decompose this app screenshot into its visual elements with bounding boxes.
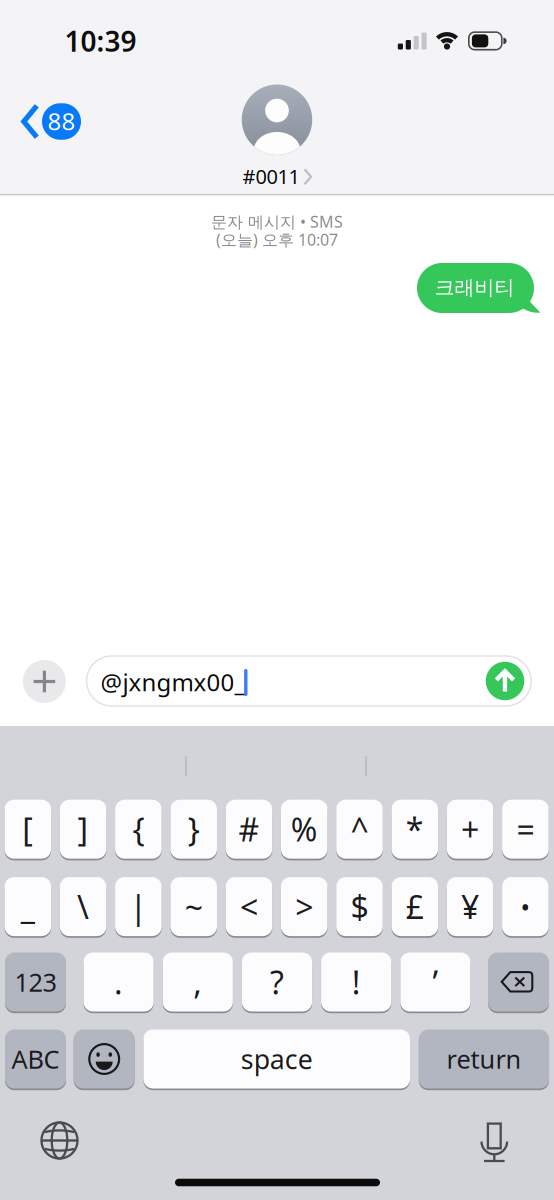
staticText: ¥	[461, 885, 479, 928]
button[interactable]: 123	[5, 951, 66, 1012]
staticText: |	[129, 885, 147, 928]
button[interactable]: Dictation	[470, 1117, 518, 1165]
staticText: ABC	[11, 1042, 59, 1076]
staticText: !	[352, 961, 361, 1003]
staticText: @jxngmx00_	[100, 666, 245, 698]
staticText: #	[238, 808, 259, 850]
staticText: 문자 메시지 • SMS	[211, 211, 343, 232]
button[interactable]: !	[321, 951, 391, 1012]
staticText: <	[240, 885, 258, 928]
staticText: (오늘) 오후 10:07	[216, 229, 338, 250]
button[interactable]: _	[4, 876, 51, 937]
button[interactable]: #	[226, 799, 272, 860]
staticText: >	[295, 885, 313, 928]
button[interactable]: $	[336, 876, 383, 937]
button[interactable]: ABC	[5, 1028, 66, 1089]
button[interactable]: £	[391, 876, 438, 937]
button[interactable]: Next keyboard	[37, 1118, 81, 1162]
staticText: •	[520, 890, 530, 923]
button[interactable]: =	[502, 799, 549, 860]
button[interactable]: •	[502, 876, 549, 937]
staticText: £	[406, 885, 424, 928]
button[interactable]: ,	[163, 951, 233, 1012]
staticText: #0011	[242, 163, 299, 190]
staticText: +	[461, 808, 479, 850]
button[interactable]: <	[226, 876, 272, 937]
button[interactable]: ¥	[447, 876, 493, 937]
button[interactable]: ?	[242, 951, 312, 1012]
button[interactable]: .	[83, 951, 154, 1012]
button[interactable]: \	[60, 876, 106, 937]
button[interactable]: space	[143, 1028, 410, 1089]
staticText: *	[406, 808, 424, 850]
staticText: _	[21, 885, 35, 928]
button[interactable]: Send	[486, 662, 524, 700]
staticText: \	[77, 885, 89, 928]
staticText: .	[114, 961, 123, 1003]
button[interactable]: >	[281, 876, 327, 937]
button[interactable]: {	[115, 799, 162, 860]
staticText: }	[188, 808, 200, 850]
button[interactable]: Back	[10, 103, 95, 140]
button[interactable]: return	[419, 1028, 549, 1089]
button[interactable]: ~	[170, 876, 217, 937]
button[interactable]: +	[447, 799, 493, 860]
button[interactable]: |	[115, 876, 162, 937]
staticText: ~	[185, 885, 203, 928]
staticText: space	[241, 1041, 313, 1077]
staticText: 크래비티	[434, 275, 514, 300]
button[interactable]: %	[281, 799, 327, 860]
button[interactable]: ^	[336, 799, 383, 860]
staticText: ,	[193, 961, 202, 1003]
button[interactable]: }	[170, 799, 217, 860]
staticText: ^	[350, 808, 368, 850]
button[interactable]: Apps	[23, 660, 66, 703]
button[interactable]: [	[4, 799, 51, 860]
button[interactable]: ]	[60, 799, 106, 860]
staticText: %	[291, 808, 318, 850]
button[interactable]: ’	[400, 951, 470, 1012]
staticText: ?	[270, 961, 284, 1003]
button[interactable]: Emoji	[74, 1028, 135, 1089]
staticText: $	[350, 885, 368, 928]
button[interactable]: *	[391, 799, 438, 860]
staticText: return	[446, 1042, 521, 1076]
staticText: 10:39	[64, 22, 136, 60]
staticText: ]	[78, 808, 89, 850]
staticText: =	[516, 808, 534, 850]
staticText: [	[22, 808, 33, 850]
staticText: 88	[47, 105, 75, 137]
staticText: {	[132, 808, 144, 850]
staticText: 123	[14, 965, 56, 999]
button[interactable]: Delete	[488, 951, 549, 1012]
staticText: ’	[432, 961, 438, 1003]
button[interactable]: Conversation details for #0011	[242, 84, 312, 190]
